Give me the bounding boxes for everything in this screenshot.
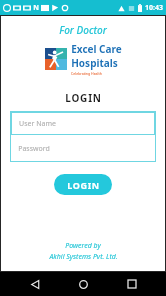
button[interactable]: LOGIN xyxy=(54,174,112,195)
staticText: Akhil Systems Pvt. Ltd. xyxy=(49,252,118,262)
button[interactable]: Back xyxy=(21,272,49,296)
staticText: N xyxy=(33,3,39,13)
staticText: For Doctor xyxy=(59,23,107,37)
button[interactable]: Home xyxy=(69,272,97,296)
staticText: Powered by xyxy=(65,241,101,251)
button[interactable]: User Name xyxy=(11,112,155,135)
staticText: User Name xyxy=(19,119,56,129)
staticText: Password xyxy=(18,144,50,154)
staticText: Hospitals xyxy=(71,56,118,70)
button[interactable]: Recent apps xyxy=(118,272,146,296)
staticText: LOGIN xyxy=(65,91,102,105)
staticText: 10:43 xyxy=(145,3,163,13)
button[interactable]: Password xyxy=(10,136,156,162)
staticText: Celebrating Health xyxy=(71,71,102,76)
staticText: LOGIN xyxy=(67,179,100,191)
staticText: Excel Care xyxy=(71,42,122,56)
